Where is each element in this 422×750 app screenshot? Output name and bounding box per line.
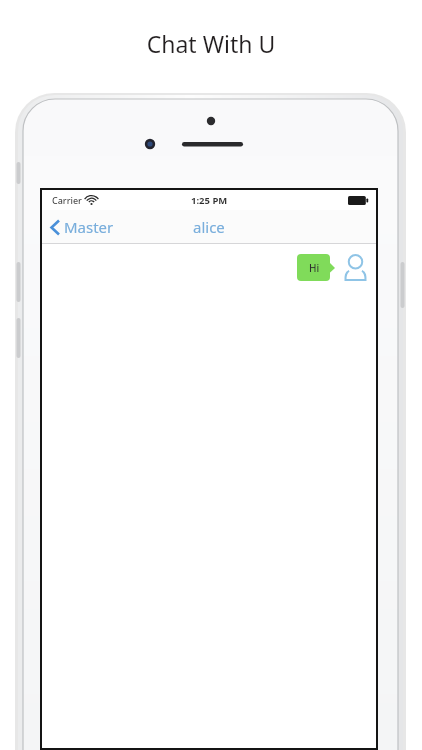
other: Contact avatar	[343, 253, 368, 282]
button[interactable]: Master	[42, 213, 124, 241]
staticText: alice	[193, 217, 225, 237]
staticText: Chat With U	[0, 28, 422, 59]
button[interactable]: Hi	[297, 253, 368, 282]
staticText: Hi	[309, 261, 320, 275]
staticText: 1:25 PM	[191, 194, 228, 207]
staticText: Master	[64, 217, 114, 237]
staticText: Carrier	[52, 194, 82, 206]
